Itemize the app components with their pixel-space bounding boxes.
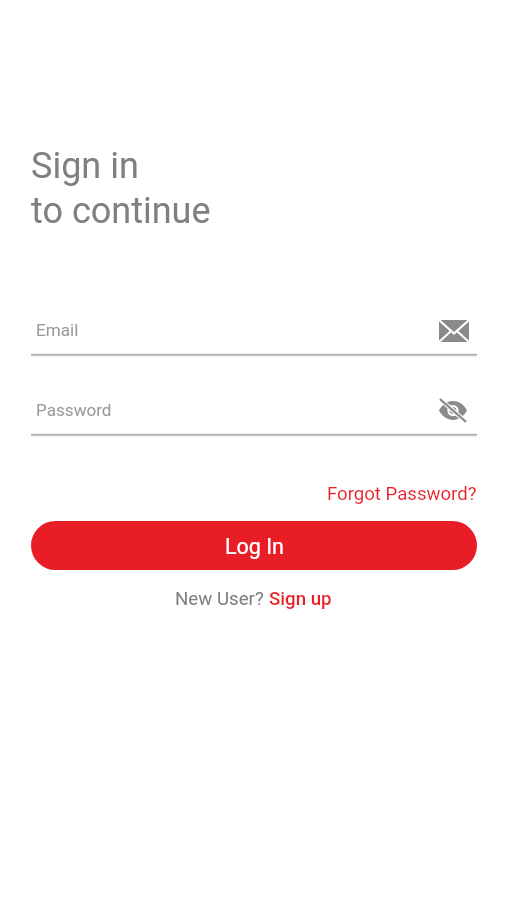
button[interactable]: Show password (434, 391, 472, 429)
staticText: Forgot Password? (327, 483, 477, 505)
staticText: Log In (225, 534, 284, 559)
staticText: Password (36, 400, 112, 420)
button[interactable]: Password (31, 400, 432, 436)
other: Email (439, 320, 469, 342)
button[interactable]: Log In (31, 521, 477, 570)
staticText: Sign up (269, 588, 332, 610)
button[interactable]: Email (31, 320, 433, 356)
button[interactable]: Sign up (269, 588, 332, 610)
staticText: Sign in to continue (31, 145, 211, 232)
staticText: Email (36, 320, 79, 340)
button[interactable]: Email (435, 312, 473, 350)
staticText: New User? (175, 588, 269, 610)
other: Show password (439, 398, 467, 423)
button[interactable]: Forgot Password? (327, 483, 477, 505)
